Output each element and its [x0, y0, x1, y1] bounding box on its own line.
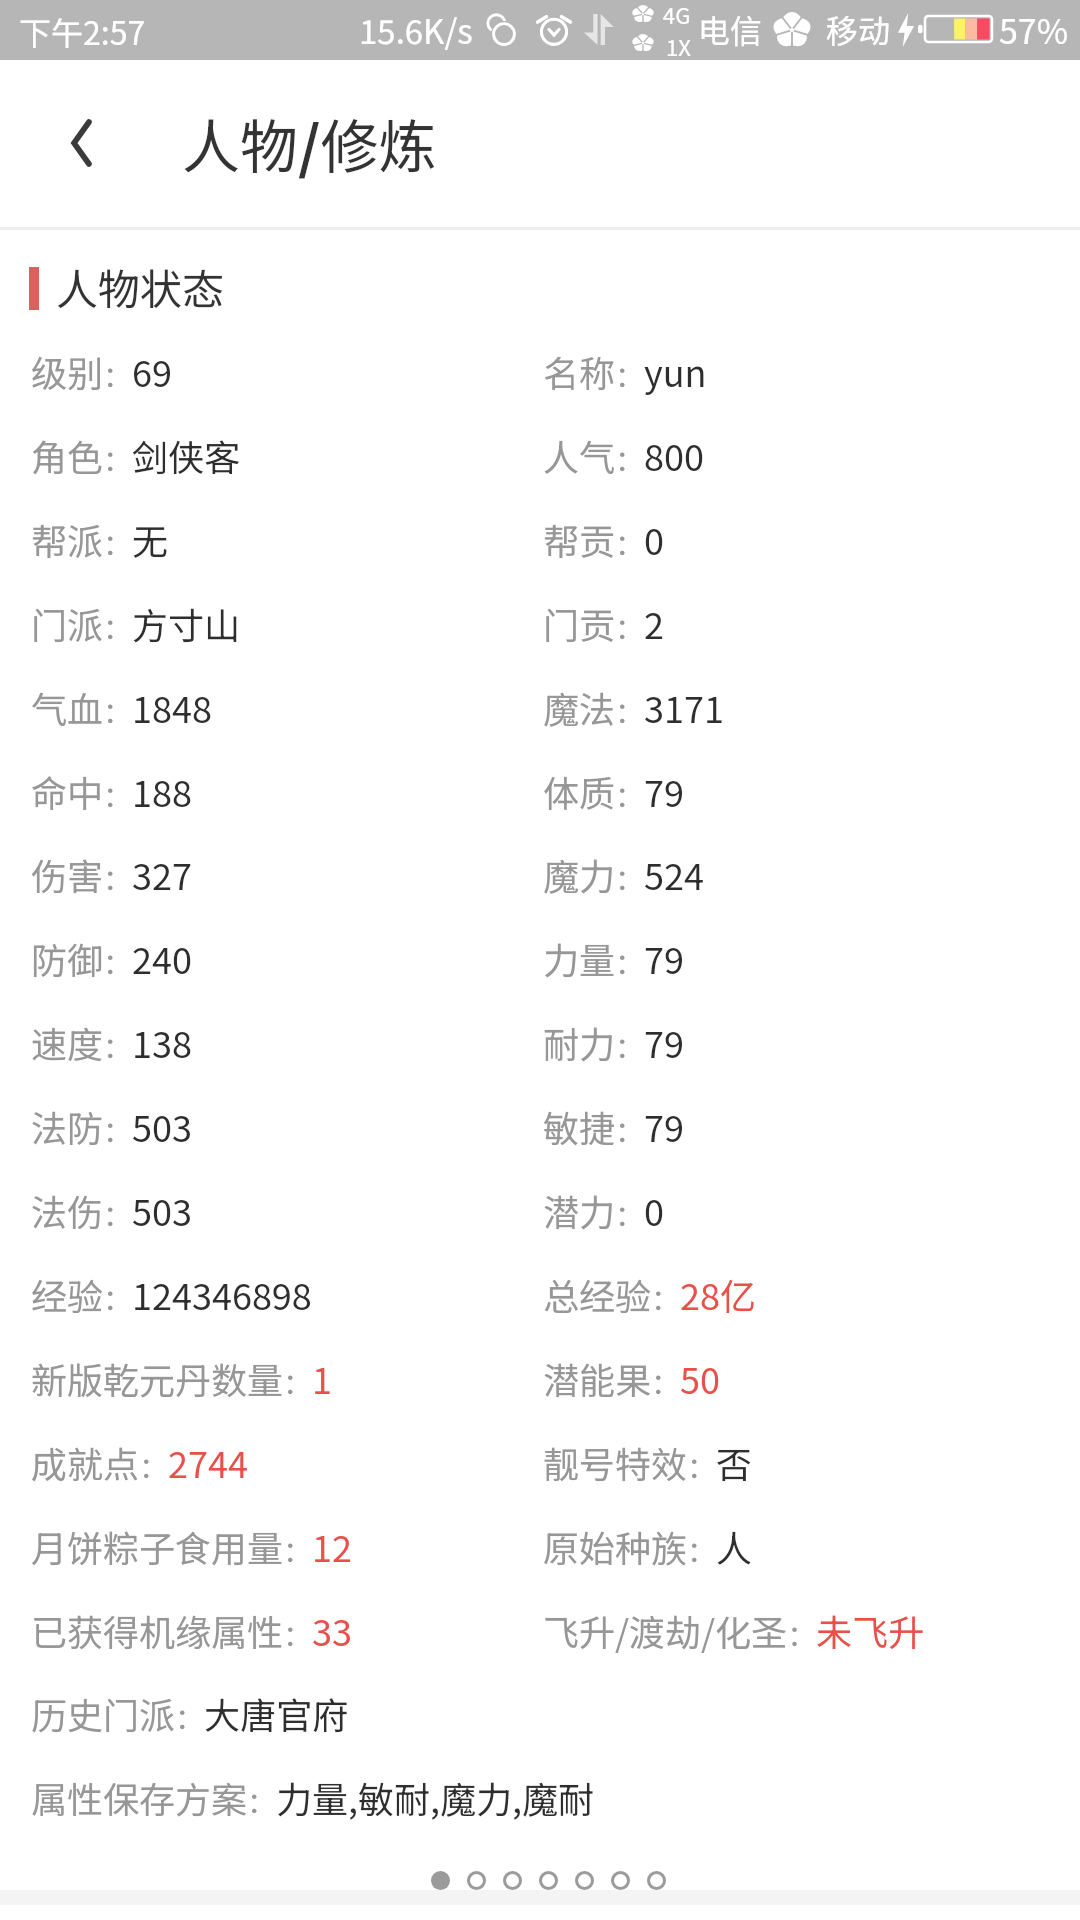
staticText: 防御：240 — [31, 932, 192, 984]
staticText: 人物状态 — [56, 256, 225, 317]
staticText: 经验：124346898 — [31, 1268, 312, 1320]
button[interactable] — [503, 1871, 522, 1890]
staticText: 魔力：524 — [543, 848, 704, 900]
button[interactable] — [467, 1871, 486, 1890]
button[interactable] — [611, 1871, 630, 1890]
staticText: 已获得机缘属性：33 — [31, 1604, 352, 1656]
staticText: 名称：yun — [543, 345, 707, 397]
staticText: 帮派：无 — [31, 513, 169, 565]
staticText: 成就点：2744 — [31, 1436, 248, 1488]
staticText: 命中：188 — [31, 765, 192, 817]
staticText: 57% — [999, 5, 1069, 54]
staticText: 15.6K/s — [359, 6, 473, 54]
staticText: 法伤：503 — [31, 1184, 192, 1236]
staticText: 力量：79 — [543, 932, 684, 984]
staticText: 月饼粽子食用量：12 — [31, 1520, 352, 1572]
button[interactable] — [575, 1871, 594, 1890]
staticText: 魔法：3171 — [543, 681, 724, 733]
staticText: 耐力：79 — [543, 1016, 684, 1068]
staticText: 级别：69 — [31, 345, 172, 397]
button[interactable]: Back — [17, 78, 147, 208]
staticText: 下午2:57 — [19, 8, 146, 54]
staticText: 飞升/渡劫/化圣：未飞升 — [543, 1604, 925, 1656]
staticText: 速度：138 — [31, 1016, 192, 1068]
staticText: 人气：800 — [543, 429, 704, 481]
staticText: 总经验：28亿 — [543, 1268, 756, 1320]
staticText: 移动 — [826, 6, 891, 52]
staticText: 角色：剑侠客 — [31, 429, 241, 481]
staticText: 气血：1848 — [31, 681, 212, 733]
staticText: 潜能果：50 — [543, 1352, 720, 1404]
button[interactable] — [647, 1871, 666, 1890]
staticText: 敏捷：79 — [543, 1100, 684, 1152]
staticText: 门贡：2 — [543, 597, 664, 649]
staticText: 帮贡：0 — [543, 513, 664, 565]
staticText: 属性保存方案：力量,敏耐,魔力,魔耐 — [31, 1771, 595, 1823]
staticText: 法防：503 — [31, 1100, 192, 1152]
button[interactable] — [431, 1871, 450, 1890]
staticText: 靓号特效：否 — [543, 1436, 753, 1488]
staticText: 原始种族：人 — [543, 1520, 753, 1572]
staticText: 体质：79 — [543, 765, 684, 817]
staticText: 历史门派：大唐官府 — [31, 1687, 349, 1739]
staticText: 新版乾元丹数量：1 — [31, 1352, 332, 1404]
staticText: 1X — [666, 30, 691, 62]
staticText: 潜力：0 — [543, 1184, 664, 1236]
staticText: 人物/修炼 — [182, 101, 437, 185]
staticText: 伤害：327 — [31, 848, 192, 900]
staticText: 电信 — [698, 6, 763, 52]
staticText: 4G — [663, 0, 691, 30]
staticText: 门派：方寸山 — [31, 597, 241, 649]
button[interactable] — [539, 1871, 558, 1890]
